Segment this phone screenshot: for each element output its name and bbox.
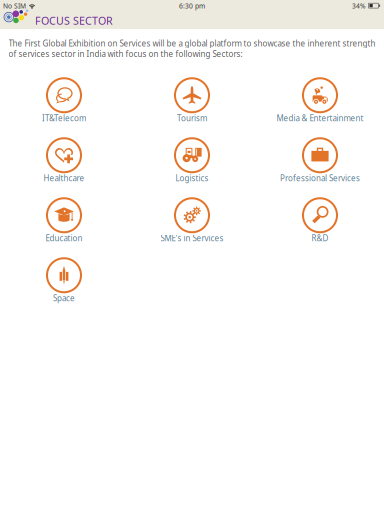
staticText: The First Global Exhibition on Services … bbox=[8, 38, 375, 59]
staticText: Space bbox=[53, 293, 75, 303]
button[interactable]: Education bbox=[0, 194, 128, 254]
button[interactable]: Professional Services bbox=[256, 134, 384, 194]
button[interactable]: SME's in Services bbox=[128, 194, 256, 254]
button[interactable]: Healthcare bbox=[0, 134, 128, 194]
button[interactable]: R&D bbox=[256, 194, 384, 254]
staticText: Healthcare bbox=[43, 173, 84, 183]
button[interactable]: IT&Telecom bbox=[0, 74, 128, 134]
staticText: Professional Services bbox=[280, 173, 360, 183]
staticText: SME's in Services bbox=[160, 233, 223, 243]
button[interactable]: Tourism bbox=[128, 74, 256, 134]
staticText: 34% bbox=[352, 2, 366, 10]
button[interactable]: Logistics bbox=[128, 134, 256, 194]
staticText: Education bbox=[45, 233, 82, 243]
staticText: FOCUS SECTOR bbox=[35, 13, 113, 28]
staticText: Logistics bbox=[175, 173, 208, 183]
staticText: IT&Telecom bbox=[42, 113, 86, 123]
staticText: No SIM bbox=[3, 2, 26, 10]
button[interactable]: Space bbox=[0, 254, 128, 314]
staticText: Tourism bbox=[177, 113, 207, 123]
staticText: 6:30 pm bbox=[179, 2, 205, 10]
staticText: R&D bbox=[311, 233, 328, 243]
staticText: Media & Entertainment bbox=[276, 113, 363, 123]
button[interactable]: Media & Entertainment bbox=[256, 74, 384, 134]
